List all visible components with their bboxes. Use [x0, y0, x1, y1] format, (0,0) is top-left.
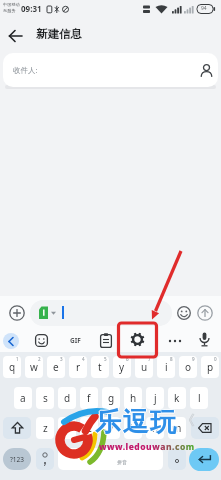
button[interactable]: [197, 305, 213, 321]
staticText: g: [108, 391, 115, 405]
button[interactable]: [168, 448, 186, 470]
button[interactable]: b: [124, 417, 142, 439]
staticText: s: [43, 391, 48, 405]
staticText: p: [207, 360, 214, 374]
staticText: 拼音: [117, 459, 127, 465]
staticText: d: [64, 391, 71, 405]
button[interactable]: [4, 24, 28, 48]
staticText: ?123: [10, 455, 24, 464]
button[interactable]: m: [168, 417, 186, 439]
button[interactable]: s: [36, 387, 54, 409]
staticText: 乐逗玩: [94, 406, 177, 439]
staticText: r: [76, 360, 81, 374]
staticText: f: [87, 391, 91, 405]
staticText: a: [20, 391, 26, 405]
button[interactable]: x: [58, 417, 76, 439]
staticText: 8: [170, 356, 173, 362]
staticText: 乐逗玩: [95, 407, 178, 440]
button[interactable]: i: [157, 356, 175, 378]
staticText: 0: [214, 356, 217, 362]
button[interactable]: e: [47, 356, 65, 378]
staticText: 09:31: [21, 3, 42, 14]
staticText: o: [185, 360, 192, 374]
staticText: 乐逗玩: [95, 406, 178, 439]
button[interactable]: l: [190, 387, 208, 409]
button[interactable]: [58, 448, 163, 470]
button[interactable]: w: [25, 356, 43, 378]
button[interactable]: [3, 333, 19, 349]
staticText: 乐逗玩: [96, 406, 179, 439]
staticText: 4: [82, 356, 85, 362]
staticText: 1: [16, 356, 19, 362]
button[interactable]: t: [91, 356, 109, 378]
button[interactable]: q: [3, 356, 21, 378]
staticText: 中国移动: [3, 2, 20, 7]
staticText: 5: [104, 356, 107, 362]
button[interactable]: r: [69, 356, 87, 378]
staticText: h: [130, 391, 137, 405]
button[interactable]: p: [201, 356, 219, 378]
staticText: 收件人:: [13, 65, 38, 75]
button[interactable]: [3, 417, 31, 439]
staticText: u: [141, 360, 148, 374]
button[interactable]: [35, 334, 48, 347]
staticText: 7: [148, 356, 151, 362]
button[interactable]: [189, 448, 219, 471]
button[interactable]: n: [146, 417, 164, 439]
button[interactable]: c: [80, 417, 98, 439]
staticText: 3: [60, 356, 63, 362]
button[interactable]: ?123: [3, 448, 31, 470]
button[interactable]: [168, 339, 182, 343]
staticText: m: [172, 421, 182, 435]
staticText: v: [108, 421, 114, 435]
staticText: x: [64, 421, 70, 435]
staticText: 无服务: [3, 8, 16, 13]
button[interactable]: [36, 448, 54, 470]
button[interactable]: [191, 417, 219, 439]
button[interactable]: [130, 332, 145, 347]
button[interactable]: d: [58, 387, 76, 409]
staticText: q: [9, 360, 16, 374]
button[interactable]: h: [124, 387, 142, 409]
staticText: j: [154, 391, 157, 405]
button[interactable]: y: [113, 356, 131, 378]
staticText: i: [165, 360, 168, 374]
button[interactable]: g: [102, 387, 120, 409]
staticText: 新建信息: [36, 27, 82, 41]
staticText: b: [130, 421, 137, 435]
staticText: e: [53, 360, 59, 374]
staticText: n: [152, 421, 159, 435]
button[interactable]: a: [14, 387, 32, 409]
staticText: 《: [181, 412, 195, 430]
staticText: l: [198, 391, 201, 405]
staticText: 6: [126, 356, 129, 362]
staticText: t: [98, 360, 102, 374]
staticText: y: [119, 360, 125, 374]
button[interactable]: 收件人:: [3, 53, 218, 87]
button[interactable]: v: [102, 417, 120, 439]
staticText: 乐逗玩: [95, 405, 178, 438]
button[interactable]: [38, 306, 58, 320]
button[interactable]: [200, 64, 213, 77]
button[interactable]: [30, 300, 172, 326]
staticText: GIF: [70, 336, 81, 345]
staticText: k: [174, 391, 180, 405]
button[interactable]: z: [36, 417, 54, 439]
button[interactable]: [177, 306, 191, 320]
staticText: c: [87, 421, 92, 435]
button[interactable]: [100, 333, 112, 348]
staticText: w: [30, 360, 38, 374]
staticText: z: [43, 421, 48, 435]
button[interactable]: f: [80, 387, 98, 409]
button[interactable]: o: [179, 356, 197, 378]
button[interactable]: j: [146, 387, 164, 409]
button[interactable]: [9, 305, 25, 321]
staticText: www.ledouwan.com: [99, 441, 195, 453]
button[interactable]: k: [168, 387, 186, 409]
staticText: 9: [192, 356, 195, 362]
button[interactable]: u: [135, 356, 153, 378]
button[interactable]: [199, 332, 210, 347]
staticText: 2: [38, 356, 41, 362]
staticText: 94: [201, 5, 207, 12]
